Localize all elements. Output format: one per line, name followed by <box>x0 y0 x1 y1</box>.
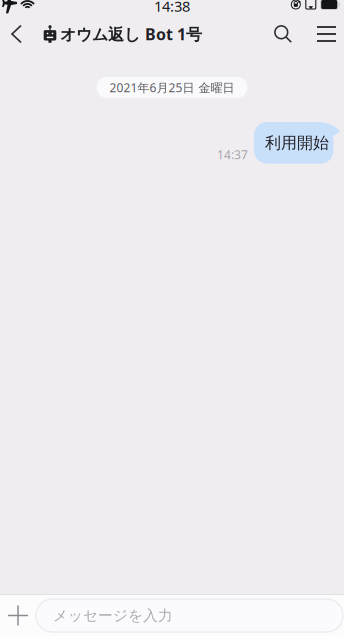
button[interactable]: Back <box>3 14 30 54</box>
staticText: 14:38 <box>154 0 190 16</box>
staticText: メッセージを入力 <box>53 606 173 624</box>
button[interactable]: Search <box>267 14 299 54</box>
button[interactable]: Add attachment <box>0 595 36 636</box>
staticText: 利用開始 <box>265 133 329 153</box>
staticText: 14:37 <box>217 147 248 163</box>
button[interactable]: Menu <box>312 14 341 54</box>
staticText: 2021年6月25日 金曜日 <box>109 79 234 95</box>
staticText: オウム返し Bot 1号 <box>60 23 202 45</box>
